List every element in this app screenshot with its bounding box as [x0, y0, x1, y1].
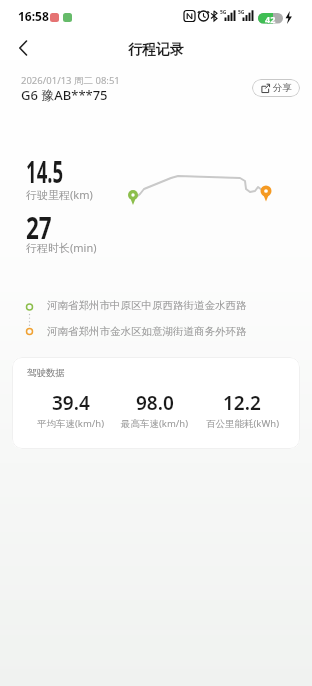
button[interactable]: 驾驶数据 [12, 357, 300, 449]
staticText: 河南省郑州市中原区中原西路街道金水西路 [47, 299, 247, 312]
staticText: 42 [265, 13, 276, 25]
staticText: 98.0 [136, 390, 174, 416]
staticText: 行驶里程(km) [26, 187, 93, 202]
button[interactable]: 分享 [252, 79, 300, 97]
staticText: 5G [238, 9, 245, 16]
staticText: 14.5 [26, 151, 63, 192]
staticText: 驾驶数据 [27, 367, 65, 379]
staticText: 行程时长(min) [26, 240, 97, 255]
staticText: 分享 [273, 82, 292, 94]
staticText: 5G [220, 9, 227, 16]
staticText: 平均车速(km/h) [37, 417, 105, 430]
staticText: 河南省郑州市金水区如意湖街道商务外环路 [47, 325, 247, 338]
staticText: 最高车速(km/h) [121, 417, 189, 430]
staticText: G6 豫AB***75 [21, 86, 108, 104]
staticText: 12.2 [223, 390, 261, 416]
button[interactable] [8, 32, 40, 64]
staticText: 27 [26, 207, 52, 248]
staticText: 百公里能耗(kWh) [206, 417, 279, 430]
staticText: 39.4 [52, 390, 90, 416]
staticText: 行程记录 [128, 41, 184, 59]
staticText: 16:58 [18, 8, 49, 24]
staticText: 2026/01/13 周二 08:51 [21, 74, 120, 87]
